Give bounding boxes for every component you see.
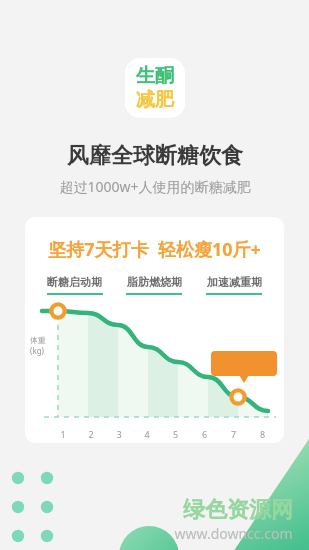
staticText: 断糖启动期 [47,275,102,289]
staticText: 3 [105,428,133,440]
staticText: 减肥 [136,88,174,112]
staticText: 5 [161,428,190,440]
staticText: (kg) [30,345,44,356]
staticText: 2 [77,428,105,440]
staticText: 7 [219,428,248,440]
staticText: 坚持7天打卡 轻松瘦10斤+ [25,237,284,262]
staticText: 6 [190,428,219,440]
staticText: 生酮 [136,64,174,88]
staticText: 超过1000w+人使用的断糖减肥 [59,177,251,196]
staticText: 加速减重期 [207,275,262,289]
staticText: www.downcc.com [174,524,293,543]
staticText: 8 [248,428,277,440]
button[interactable]: 断糖启动期 [35,275,114,295]
staticText: 风靡全球断糖饮食 [67,142,243,170]
staticText: 4 [133,428,161,440]
staticText: 脂肪燃烧期 [127,275,182,289]
staticText: 体重 [30,335,46,345]
staticText: 1 [49,428,77,440]
button[interactable]: 坚持7天打卡 轻松瘦10斤+ [25,217,284,443]
staticText: 绿色资源网 [183,496,293,524]
button[interactable]: 脂肪燃烧期 [114,275,194,295]
button[interactable]: 加速减重期 [194,275,274,295]
button[interactable]: 生酮减肥 app icon [125,58,185,118]
